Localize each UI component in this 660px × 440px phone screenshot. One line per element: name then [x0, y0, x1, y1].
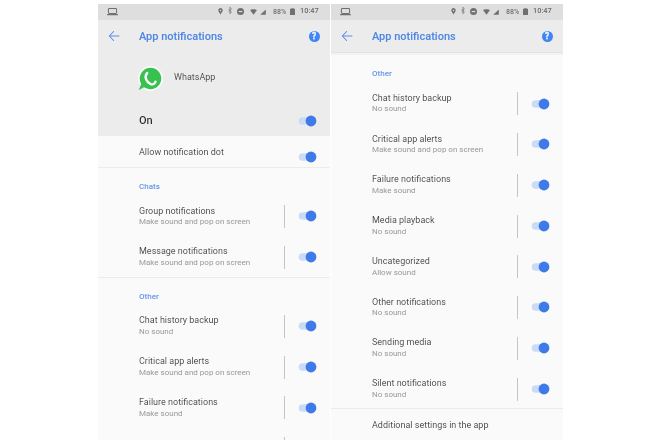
button[interactable]: [331, 163, 563, 204]
staticText: Failure notifications: [139, 397, 218, 408]
staticText: 88%: [273, 7, 287, 15]
button[interactable]: [98, 304, 330, 345]
staticText: Message notifications: [139, 246, 228, 257]
button[interactable]: [98, 194, 330, 235]
staticText: Uncategorized: [372, 256, 430, 267]
staticText: Allow notification dot: [139, 147, 224, 158]
button[interactable]: [98, 235, 330, 276]
button[interactable]: Help: [539, 28, 555, 44]
staticText: Group notifications: [139, 206, 216, 217]
staticText: Critical app alerts: [139, 356, 210, 367]
staticText: Additional settings in the app: [372, 420, 489, 431]
button[interactable]: [331, 122, 563, 163]
staticText: Sending media: [372, 337, 432, 348]
staticText: Other notifications: [372, 297, 446, 308]
staticText: Other: [139, 292, 159, 301]
button[interactable]: [331, 204, 563, 245]
button[interactable]: [331, 81, 563, 122]
staticText: Make sound and pop on screen: [139, 217, 251, 226]
button[interactable]: [331, 285, 563, 326]
button[interactable]: [331, 245, 563, 286]
staticText: ?: [545, 31, 550, 41]
button[interactable]: [98, 136, 330, 167]
staticText: Silent notifications: [372, 378, 447, 389]
staticText: Chat history backup: [139, 315, 219, 326]
staticText: Make sound and pop on screen: [372, 145, 484, 154]
staticText: 10:47: [300, 6, 319, 15]
button[interactable]: [331, 326, 563, 367]
staticText: No sound: [372, 308, 407, 317]
staticText: Make sound and pop on screen: [139, 368, 251, 377]
staticText: Chats: [139, 182, 160, 191]
staticText: Allow sound: [372, 268, 416, 277]
button[interactable]: Help: [306, 28, 322, 44]
button[interactable]: [98, 52, 330, 106]
staticText: 10:47: [533, 6, 552, 15]
staticText: 88%: [506, 7, 520, 15]
staticText: No sound: [139, 327, 174, 336]
staticText: No sound: [372, 390, 407, 399]
button[interactable]: Back: [104, 26, 123, 45]
staticText: Critical app alerts: [372, 134, 443, 145]
staticText: ?: [312, 31, 317, 41]
staticText: No sound: [372, 104, 407, 113]
staticText: Failure notifications: [372, 174, 451, 185]
staticText: App notifications: [372, 30, 456, 43]
staticText: App notifications: [139, 30, 223, 43]
button[interactable]: [331, 409, 563, 440]
staticText: Make sound and pop on screen: [139, 258, 251, 267]
button[interactable]: [98, 386, 330, 427]
button[interactable]: [98, 345, 330, 386]
button[interactable]: [98, 106, 330, 136]
staticText: WhatsApp: [174, 72, 216, 83]
staticText: Make sound: [372, 186, 416, 195]
staticText: No sound: [372, 349, 407, 358]
button[interactable]: Back: [337, 26, 356, 45]
staticText: Make sound: [139, 409, 183, 418]
staticText: Other: [372, 69, 392, 78]
staticText: Chat history backup: [372, 93, 452, 104]
staticText: On: [139, 114, 153, 127]
button[interactable]: [331, 367, 563, 408]
staticText: No sound: [372, 227, 407, 236]
staticText: Media playback: [372, 215, 435, 226]
